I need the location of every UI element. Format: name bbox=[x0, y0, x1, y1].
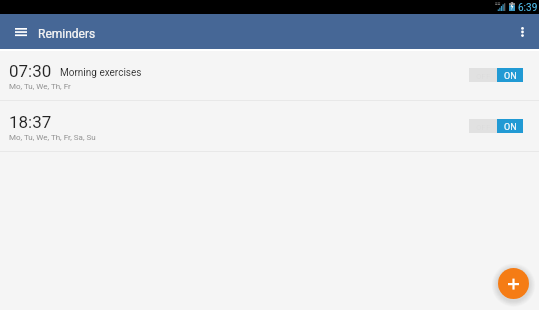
staticText: Mo, Tu, We, Th, Fr bbox=[9, 82, 71, 91]
staticText: ON bbox=[504, 122, 517, 133]
button[interactable]: More options bbox=[505, 15, 539, 49]
button[interactable]: Toggle reminder bbox=[469, 68, 523, 82]
staticText: Morning exercises bbox=[60, 67, 142, 79]
staticText: 07:30 bbox=[9, 61, 52, 81]
button[interactable]: 18:37 bbox=[0, 102, 539, 152]
button[interactable]: Add reminder bbox=[498, 268, 529, 299]
staticText: 6:39 bbox=[518, 2, 538, 14]
button[interactable]: 07:30 bbox=[0, 51, 539, 101]
button[interactable]: Toggle reminder bbox=[469, 119, 523, 133]
staticText: 18:37 bbox=[9, 112, 52, 132]
staticText: ON bbox=[504, 71, 517, 82]
staticText: Reminders bbox=[38, 27, 96, 41]
button[interactable]: Open navigation drawer bbox=[4, 15, 38, 49]
staticText: Mo, Tu, We, Th, Fr, Sa, Su bbox=[9, 133, 96, 142]
